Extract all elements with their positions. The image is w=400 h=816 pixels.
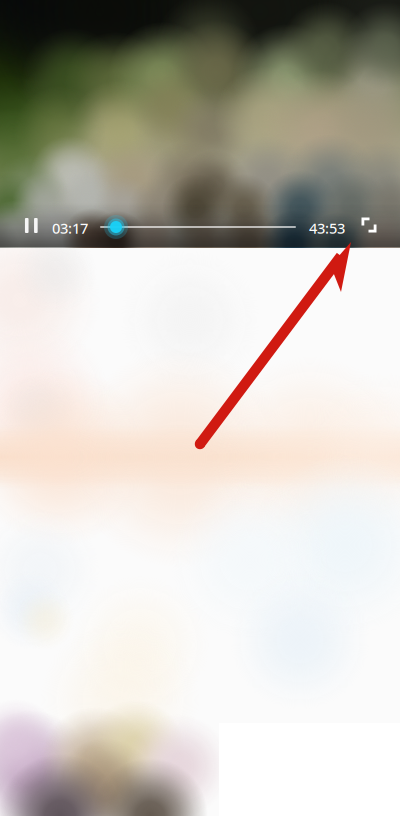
- button[interactable]: Pause: [14, 208, 48, 242]
- staticText: 03:17: [52, 218, 88, 238]
- staticText: 43:53: [309, 218, 345, 238]
- button[interactable]: Full screen: [354, 210, 384, 240]
